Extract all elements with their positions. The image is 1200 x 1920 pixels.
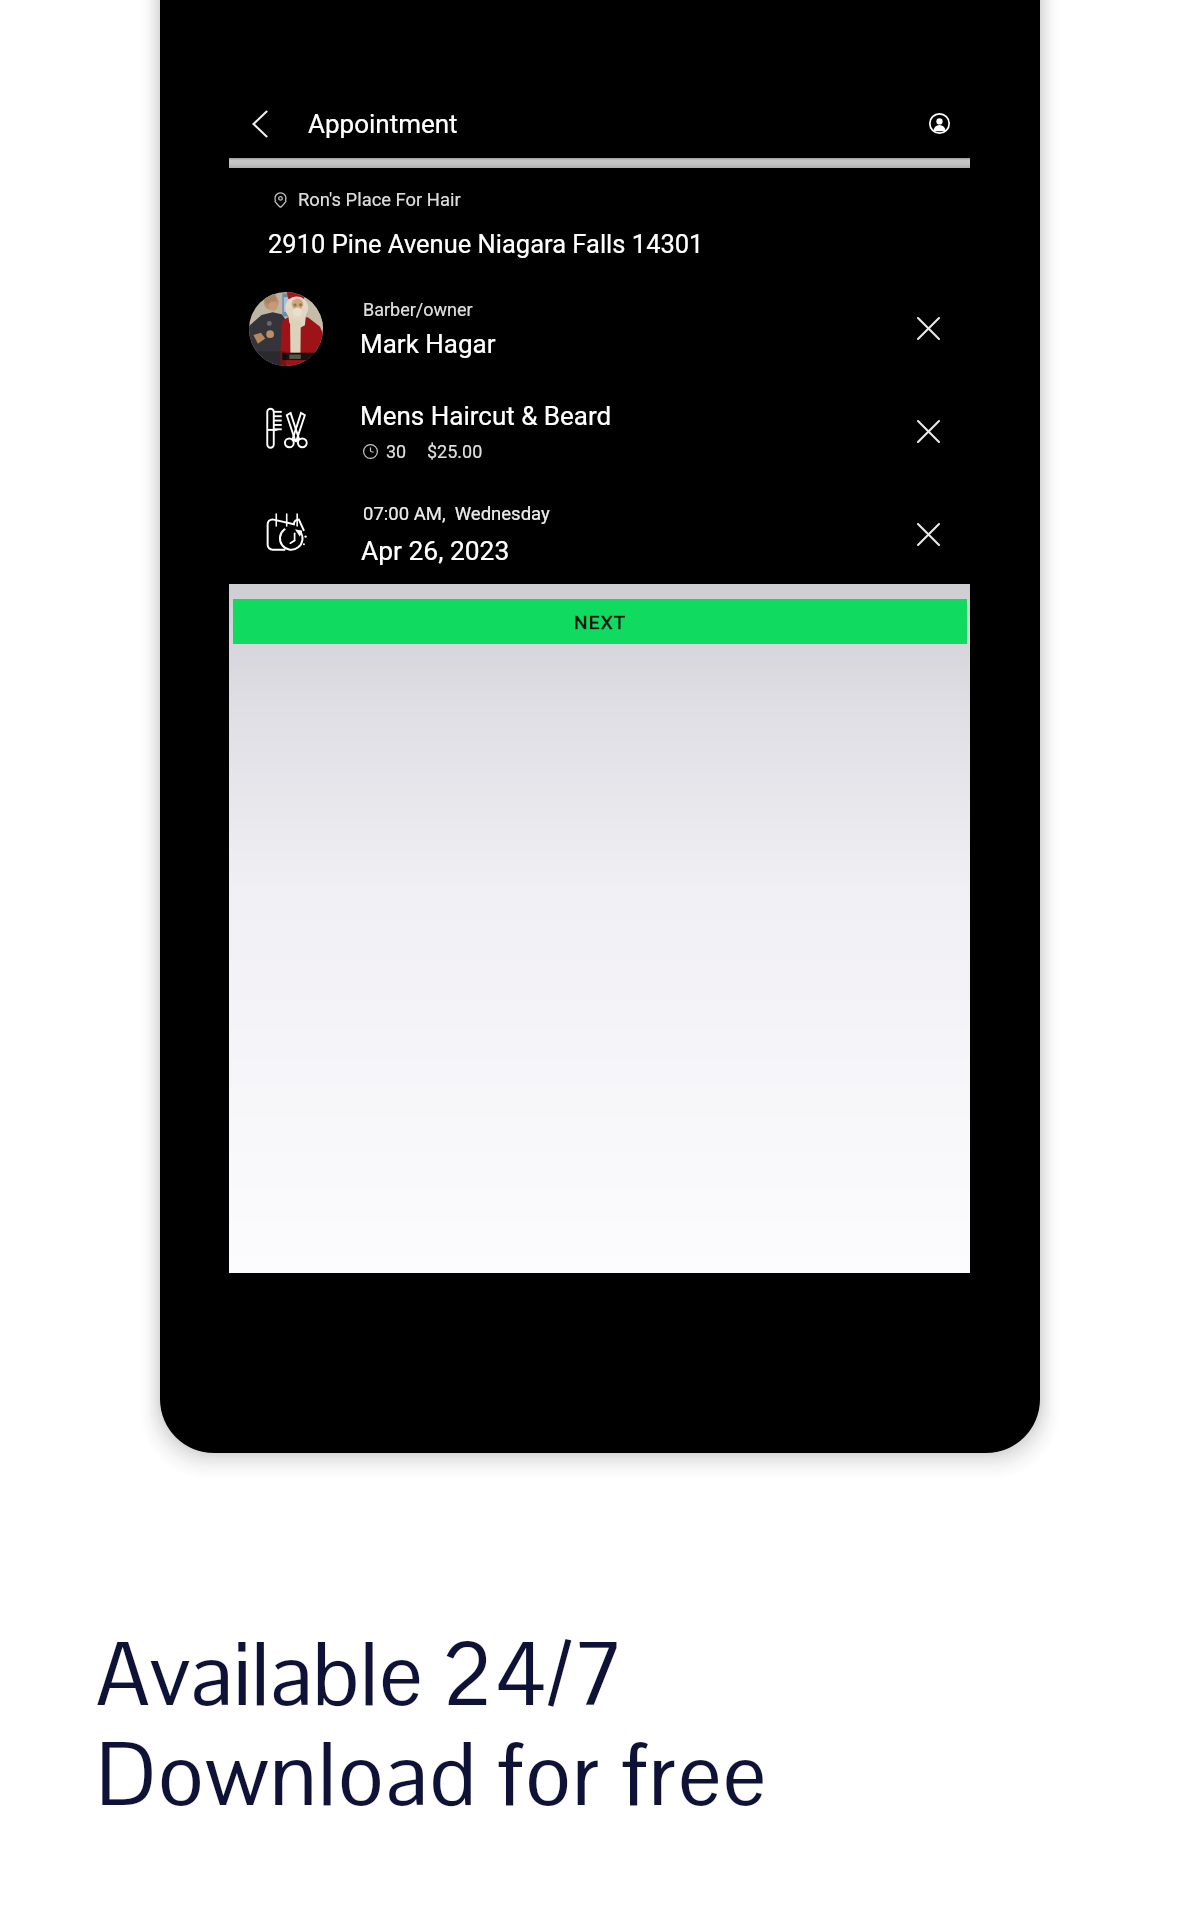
staticText: Appointment: [308, 109, 458, 139]
staticText: Barber/owner: [363, 299, 473, 320]
staticText: 07:00 AM, Wednesday: [363, 503, 550, 525]
staticText: Apr 26, 2023: [361, 536, 510, 567]
button[interactable]: Remove: [896, 296, 960, 360]
staticText: $25.00: [427, 441, 483, 462]
button[interactable]: Remove: [896, 502, 960, 566]
button[interactable]: Remove: [896, 399, 960, 463]
button[interactable]: 07:00 AM, Wednesday: [229, 492, 970, 586]
staticText: Download for free: [96, 1719, 768, 1830]
staticText: Mens Haircut & Beard: [360, 401, 612, 431]
staticText: Ron's Place For Hair: [298, 189, 461, 211]
staticText: Mark Hagar: [360, 329, 496, 359]
button[interactable]: Back: [229, 89, 291, 158]
staticText: 30: [386, 441, 407, 462]
button[interactable]: Barber/owner: [229, 286, 970, 380]
button[interactable]: Mens Haircut & Beard: [229, 389, 970, 483]
staticText: Available 24/7: [96, 1619, 624, 1730]
staticText: NEXT: [574, 611, 627, 633]
staticText: 2910 Pine Avenue Niagara Falls 14301: [268, 229, 704, 259]
button[interactable]: Ron's Place For Hair: [269, 186, 461, 214]
button[interactable]: NEXT: [233, 599, 967, 644]
button[interactable]: Account: [909, 89, 970, 158]
